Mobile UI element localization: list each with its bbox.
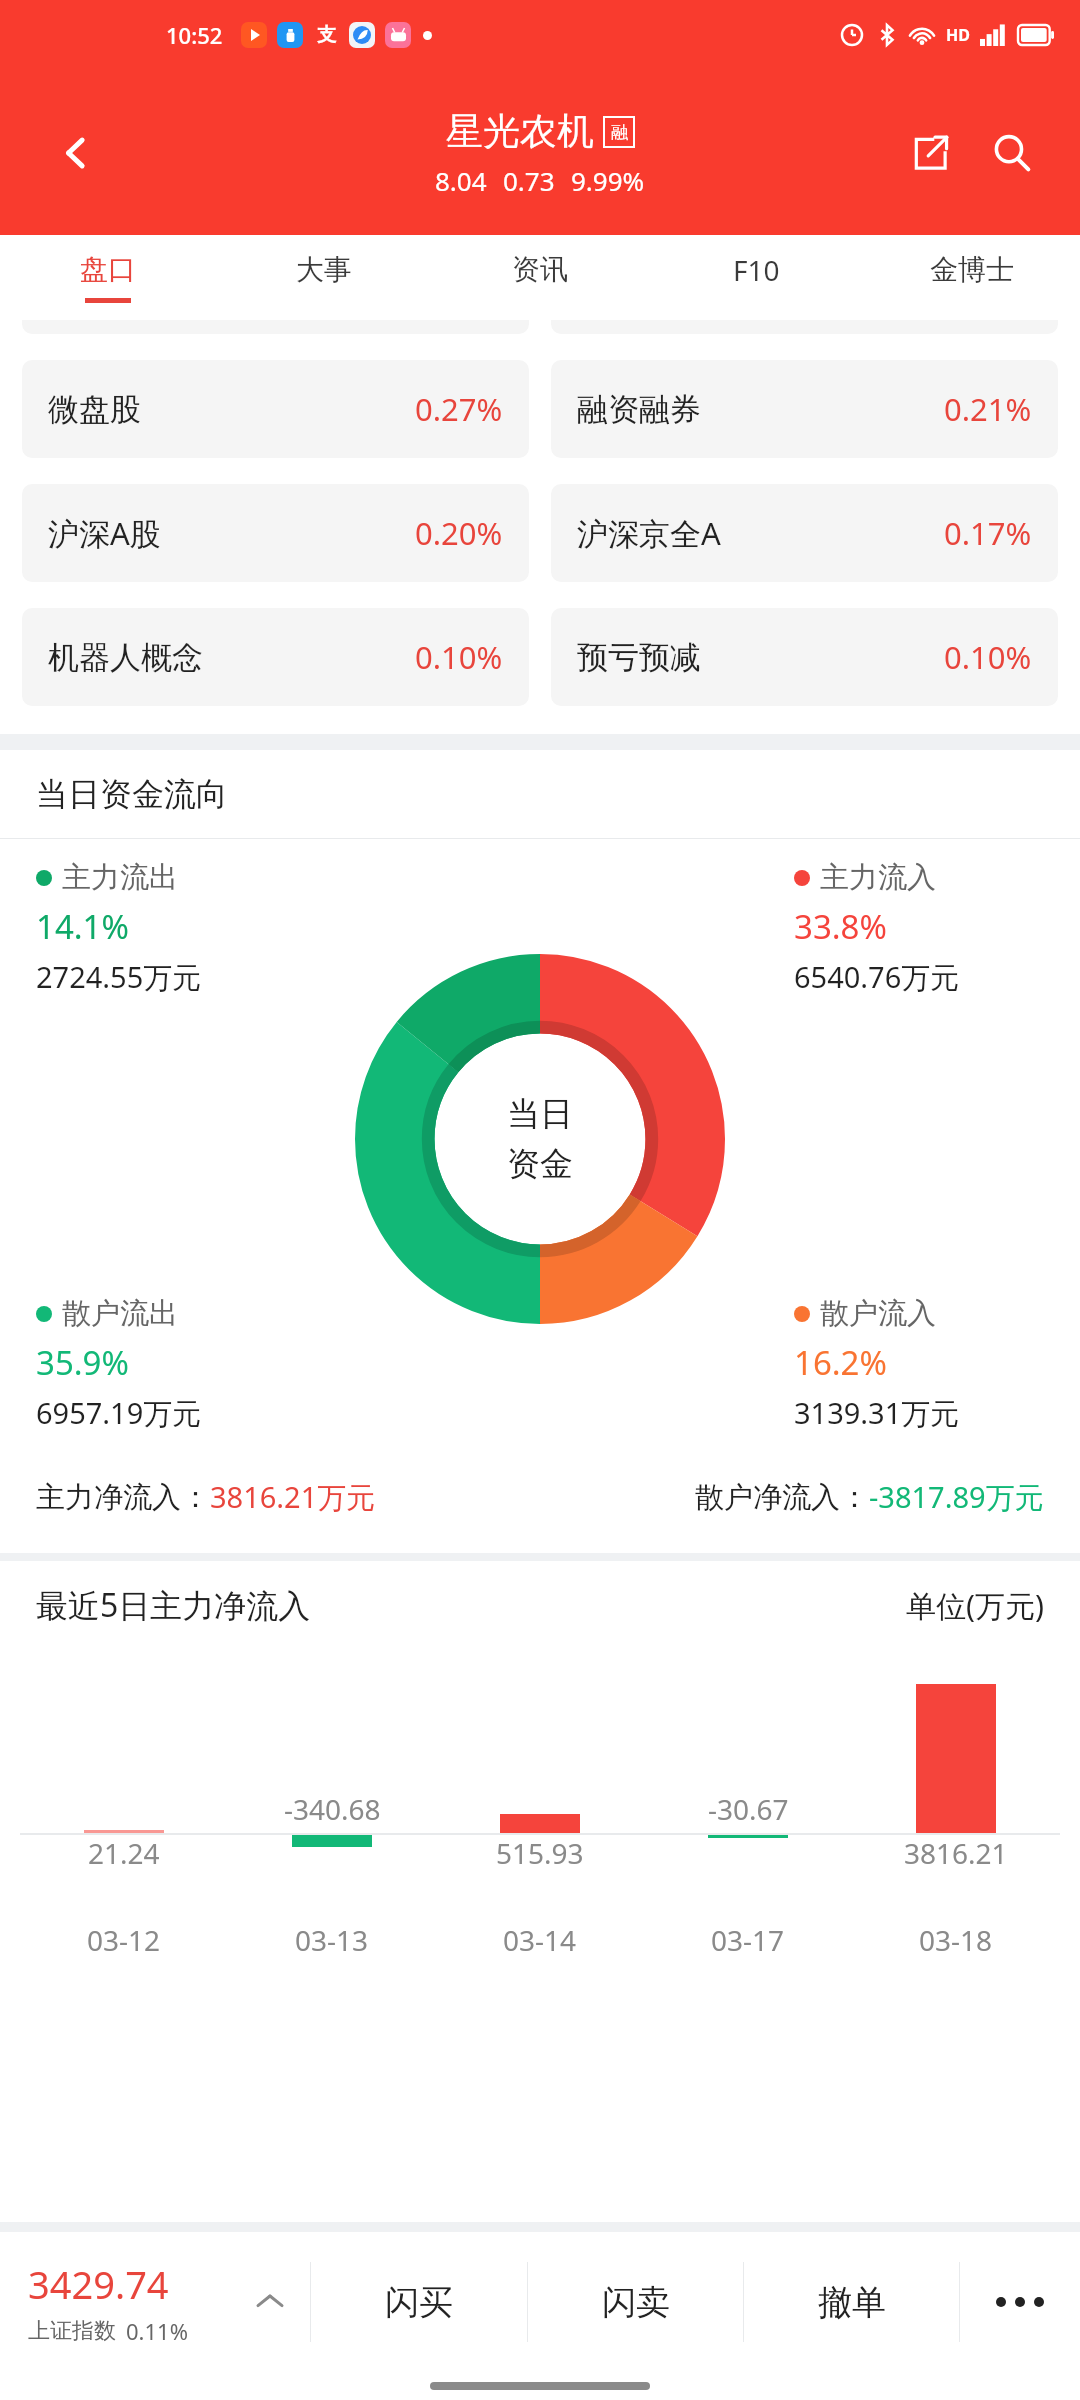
staticText: 沪深京全A [577, 512, 721, 554]
staticText: 支 [317, 23, 336, 47]
staticText: 03-14 [503, 1921, 577, 1959]
staticText: 16.2% [794, 1340, 887, 1385]
staticText: 散户净流入： [695, 1479, 869, 1516]
staticText: 3429.74 [28, 2258, 169, 2310]
staticText: 大事 [296, 252, 352, 287]
button[interactable]: Search [980, 121, 1044, 185]
staticText: 2724.55万元 [36, 957, 202, 997]
staticText: 单位(万元) [906, 1585, 1044, 1626]
staticText: 微盘股 [48, 390, 141, 429]
staticText: 散户流出 [62, 1295, 178, 1332]
button[interactable]: 资讯 [432, 235, 648, 320]
button[interactable]: 3429.74 [0, 2232, 230, 2372]
staticText: 散户流入 [820, 1295, 936, 1332]
button[interactable]: More [960, 2232, 1080, 2372]
button[interactable]: 融资融券 [551, 360, 1058, 458]
button[interactable]: 机器人概念 [22, 608, 529, 706]
button[interactable]: Expand [230, 2232, 310, 2372]
button[interactable]: 微盘股 [22, 360, 529, 458]
staticText: 10:52 [166, 20, 223, 50]
staticText: 0.21% [944, 388, 1032, 430]
staticText: 星光农机 [446, 108, 594, 155]
staticText: 撤单 [818, 2281, 886, 2324]
staticText: F10 [733, 251, 780, 289]
staticText: 03-12 [87, 1921, 161, 1959]
staticText: 上证指数 [28, 2317, 116, 2345]
button[interactable]: Share [898, 121, 962, 185]
staticText: 盘口 [80, 252, 136, 287]
staticText: 融 [611, 122, 628, 143]
button[interactable]: 预亏预减 [551, 608, 1058, 706]
staticText: 资讯 [512, 252, 568, 287]
button[interactable]: Back [44, 121, 108, 185]
staticText: -3817.89万元 [869, 1477, 1044, 1517]
staticText: 0.10% [944, 636, 1032, 678]
staticText: -340.68 [284, 1790, 381, 1828]
staticText: 14.1% [36, 904, 129, 949]
staticText: 3816.21万元 [210, 1477, 376, 1517]
staticText: 515.93 [496, 1834, 584, 1872]
staticText: 8.04 [435, 163, 487, 198]
button[interactable]: 闪买 [311, 2232, 527, 2372]
button[interactable]: 金博士 [864, 235, 1080, 320]
staticText: 融资融券 [577, 390, 701, 429]
button[interactable]: 盘口 [0, 235, 216, 320]
staticText: 03-18 [919, 1921, 993, 1959]
button[interactable]: 大事 [216, 235, 432, 320]
staticText: 最近5日主力净流入 [36, 1583, 311, 1627]
button[interactable]: F10 [648, 235, 864, 320]
staticText: 6540.76万元 [794, 957, 960, 997]
staticText: 21.24 [88, 1834, 160, 1872]
staticText: 机器人概念 [48, 638, 203, 677]
staticText: 沪深A股 [48, 512, 161, 554]
staticText: 9.99% [571, 163, 645, 198]
staticText: 闪卖 [602, 2281, 670, 2324]
staticText: 0.27% [415, 388, 503, 430]
staticText: 3816.21 [904, 1834, 1008, 1872]
button[interactable]: 沪深京全A [551, 484, 1058, 582]
staticText: 预亏预减 [577, 638, 701, 677]
staticText: 0.73 [503, 163, 555, 198]
staticText: 主力流出 [62, 859, 178, 896]
button[interactable]: 闪卖 [528, 2232, 743, 2372]
staticText: 0.11% [126, 2316, 188, 2346]
staticText: 03-17 [711, 1921, 785, 1959]
staticText: 0.10% [415, 636, 503, 678]
staticText: 主力流入 [820, 859, 936, 896]
button[interactable]: 撤单 [744, 2232, 959, 2372]
staticText: 35.9% [36, 1340, 129, 1385]
staticText: 金博士 [930, 252, 1014, 287]
staticText: 3139.31万元 [794, 1393, 960, 1433]
staticText: 0.20% [415, 512, 503, 554]
button[interactable]: 沪深A股 [22, 484, 529, 582]
staticText: -30.67 [708, 1790, 789, 1828]
staticText: 当日资金流向 [36, 774, 228, 814]
staticText: 0.17% [944, 512, 1032, 554]
staticText: 33.8% [794, 904, 887, 949]
staticText: 资金 [507, 1143, 573, 1185]
staticText: 03-13 [295, 1921, 369, 1959]
staticText: HD [946, 24, 970, 46]
staticText: 当日 [507, 1093, 573, 1135]
staticText: 6957.19万元 [36, 1393, 202, 1433]
staticText: 闪买 [385, 2281, 453, 2324]
staticText: 主力净流入： [36, 1479, 210, 1516]
